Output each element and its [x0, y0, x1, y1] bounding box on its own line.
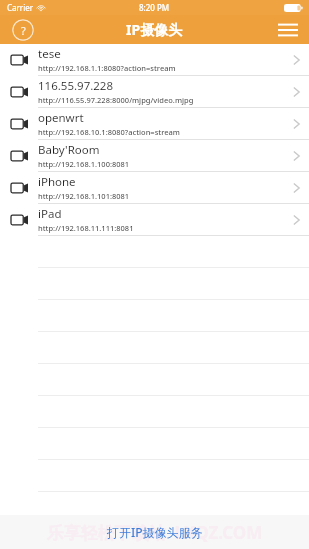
- button[interactable]: Baby'Room: [0, 140, 309, 172]
- staticText: IP摄像头: [126, 20, 183, 39]
- staticText: http://192.168.1.101:8081: [38, 191, 130, 201]
- button[interactable]: 乐享轻松下载站 LXQZ.COM: [0, 515, 309, 549]
- staticText: 116.55.97.228: [38, 78, 114, 94]
- button[interactable]: iPad: [0, 204, 309, 236]
- button[interactable]: tese: [0, 44, 309, 76]
- staticText: iPad: [38, 206, 62, 222]
- staticText: 打开IP摄像头服务: [107, 524, 203, 540]
- staticText: http://192.168.11.111:8081: [38, 223, 134, 233]
- button[interactable]: iPhone: [0, 172, 309, 204]
- staticText: 乐享轻松下载站 LXQZ.COM: [0, 521, 309, 544]
- button[interactable]: 116.55.97.228: [0, 76, 309, 108]
- staticText: 8:20 PM: [139, 2, 170, 13]
- staticText: iPhone: [38, 174, 76, 190]
- staticText: Carrier: [7, 2, 34, 13]
- staticText: http://192.168.1.1:8080?action=stream: [38, 63, 176, 73]
- button[interactable]: openwrt: [0, 108, 309, 140]
- button[interactable]: Help: [12, 19, 34, 41]
- button[interactable]: Menu: [275, 19, 301, 41]
- staticText: http://192.168.10.1:8080?action=stream: [38, 127, 180, 137]
- staticText: Baby'Room: [38, 142, 100, 158]
- staticText: openwrt: [38, 110, 84, 126]
- staticText: tese: [38, 46, 61, 62]
- staticText: ?: [21, 23, 26, 38]
- staticText: http://192.168.1.100:8081: [38, 159, 130, 169]
- staticText: http://116.55.97.228:8000/mjpg/video.mjp…: [38, 95, 194, 105]
